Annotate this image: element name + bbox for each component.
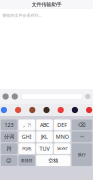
staticText: PQRS bbox=[22, 146, 31, 151]
button[interactable]: App bbox=[58, 107, 64, 113]
button[interactable]: GHI bbox=[18, 131, 35, 142]
button[interactable]: TUV bbox=[36, 143, 53, 154]
button[interactable]: App bbox=[29, 107, 35, 113]
button[interactable]: App bbox=[43, 107, 50, 113]
button[interactable]: Apps bbox=[12, 93, 18, 100]
button[interactable]: JKL bbox=[36, 131, 53, 142]
staticText: JKL bbox=[41, 133, 48, 140]
staticText: 123 bbox=[5, 121, 14, 128]
button[interactable]: Camera bbox=[2, 93, 9, 100]
button[interactable]: 符 bbox=[1, 143, 17, 154]
button[interactable]: DEF bbox=[54, 119, 70, 130]
button[interactable]: ⌫ bbox=[72, 119, 92, 130]
button[interactable]: MNO bbox=[54, 131, 70, 142]
staticText: TUV bbox=[39, 145, 49, 152]
button[interactable]: 表情符 bbox=[18, 155, 35, 166]
staticText: DEF bbox=[57, 121, 67, 128]
button[interactable]: App bbox=[1, 107, 7, 113]
staticText: ^^ bbox=[80, 134, 84, 139]
button[interactable]: ABC bbox=[36, 119, 53, 130]
button[interactable]: App bbox=[86, 107, 92, 113]
staticText: ⌫ bbox=[78, 122, 86, 128]
staticText: ,。?! bbox=[23, 122, 31, 127]
button[interactable]: 分词 bbox=[1, 131, 17, 142]
button[interactable]: WXYZ bbox=[54, 143, 70, 154]
staticText: 换行 bbox=[78, 152, 86, 157]
button[interactable]: App bbox=[72, 107, 78, 113]
staticText: ☺ bbox=[6, 158, 12, 164]
staticText: MNO bbox=[56, 133, 69, 140]
staticText: 接收的文件会保存到... bbox=[2, 12, 41, 18]
staticText: 空格 bbox=[48, 157, 58, 164]
button[interactable]: ^^ bbox=[72, 131, 92, 142]
staticText: 文件传输助手 bbox=[31, 1, 61, 8]
staticText: 表情符 bbox=[21, 158, 33, 163]
button[interactable]: App bbox=[15, 107, 21, 113]
button[interactable]: 换行 bbox=[72, 143, 92, 166]
button[interactable]: ☺ bbox=[1, 155, 17, 166]
staticText: 分词 bbox=[4, 133, 14, 140]
button[interactable]: 空格 bbox=[36, 155, 70, 166]
button[interactable]: 123 bbox=[1, 119, 17, 130]
button[interactable]: Send bbox=[85, 94, 90, 99]
staticText: WXYZ bbox=[57, 146, 67, 151]
staticText: GHI bbox=[22, 133, 32, 140]
button[interactable]: ,。?! bbox=[18, 119, 35, 130]
staticText: 符 bbox=[7, 145, 12, 152]
button[interactable]: PQRS bbox=[18, 143, 35, 154]
staticText: ABC bbox=[40, 121, 49, 128]
